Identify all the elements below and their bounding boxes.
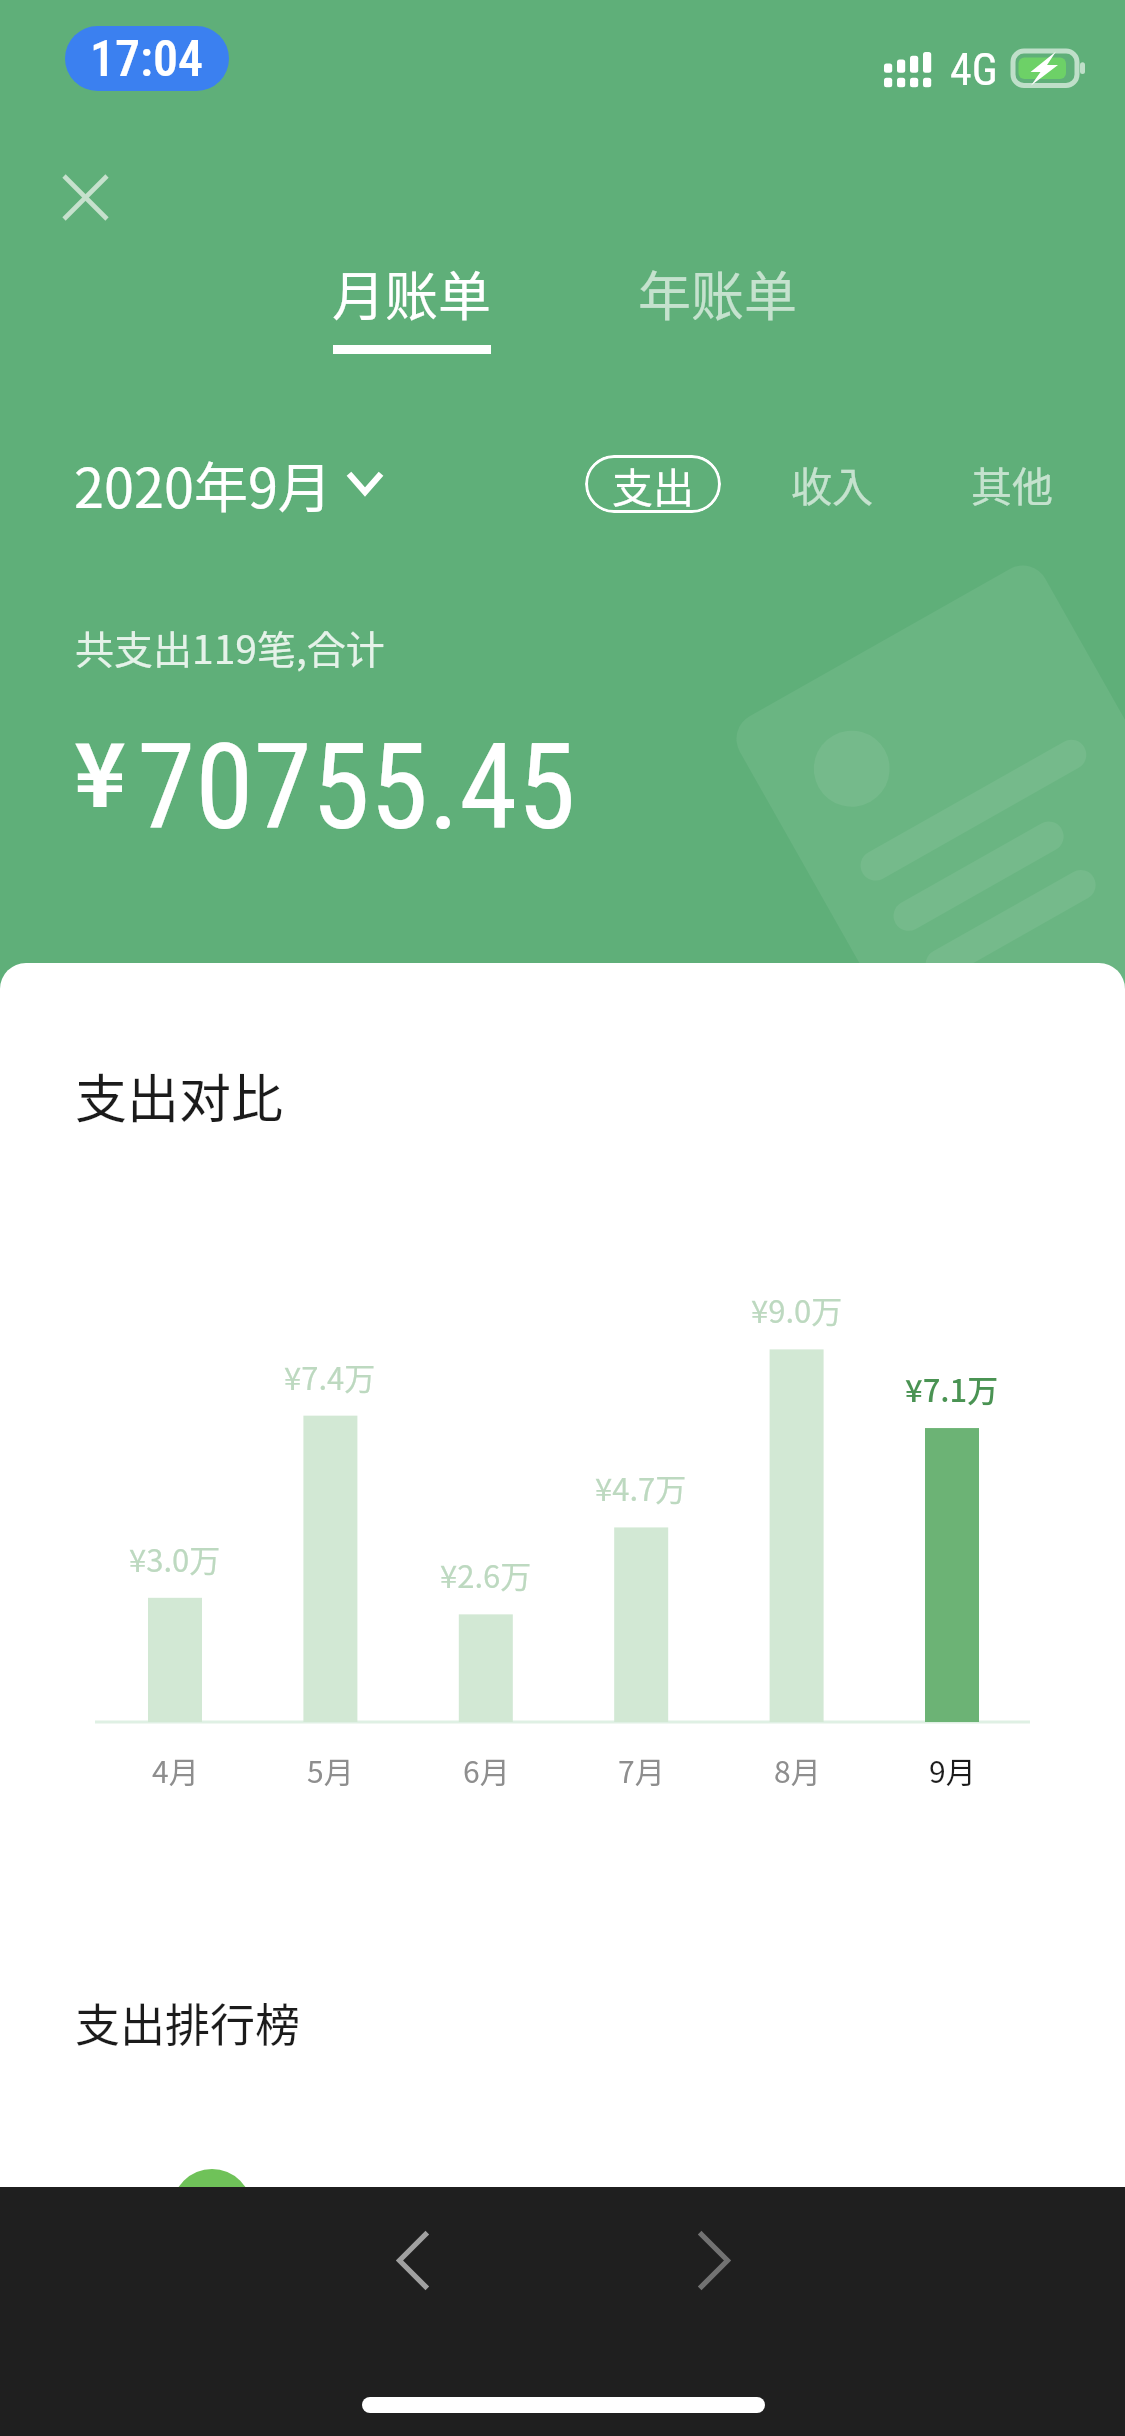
staticText: 9月: [929, 1748, 976, 1791]
staticText: ¥7.1万: [905, 1366, 999, 1411]
staticText: 4月: [152, 1748, 199, 1791]
button[interactable]: 其他: [955, 444, 1069, 523]
button[interactable]: 月账单: [314, 255, 509, 354]
staticText: ¥9.0万: [751, 1287, 843, 1332]
staticText: 月账单: [332, 255, 491, 332]
staticText: 6月: [463, 1748, 510, 1791]
staticText: 2020年9月: [74, 445, 332, 523]
button[interactable]: 收入: [775, 444, 889, 523]
staticText: 5月: [307, 1748, 354, 1791]
button[interactable]: Back: [357, 2205, 467, 2315]
staticText: 其他: [971, 454, 1053, 513]
staticText: 支出对比: [75, 1058, 284, 1133]
staticText: ¥2.6万: [440, 1552, 532, 1597]
staticText: ¥7.4万: [284, 1354, 376, 1399]
staticText: 支出: [612, 455, 694, 513]
staticText: 支出排行榜: [75, 1990, 301, 2055]
staticText: 7月: [618, 1748, 665, 1791]
staticText: ¥: [74, 705, 126, 832]
button[interactable]: Forward: [659, 2205, 769, 2315]
staticText: ¥3.0万: [129, 1536, 221, 1581]
staticText: 4G: [950, 44, 998, 96]
staticText: 8月: [774, 1748, 821, 1791]
button[interactable]: 支出: [585, 455, 721, 513]
button[interactable]: 2020年9月: [60, 431, 396, 537]
button[interactable]: [0, 2129, 1125, 2289]
staticText: ¥4.7万: [595, 1465, 687, 1510]
staticText: 70755.45: [137, 719, 576, 857]
staticText: 17:04: [90, 30, 204, 89]
button[interactable]: 年账单: [620, 255, 815, 332]
staticText: 年账单: [638, 255, 797, 332]
staticText: 收入: [791, 454, 873, 513]
staticText: 共支出119笔,合计: [75, 619, 385, 675]
button[interactable]: Close: [36, 148, 134, 246]
